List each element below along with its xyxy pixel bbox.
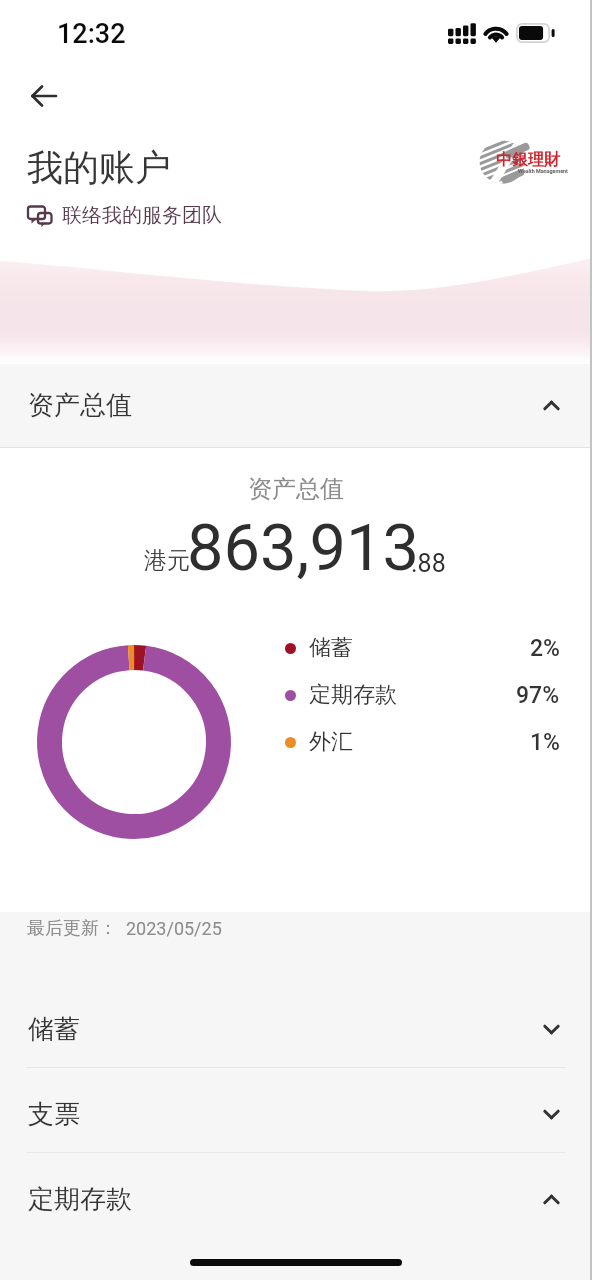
- staticText: 我的账户: [27, 145, 171, 190]
- staticText: 2%: [530, 635, 560, 662]
- other: BOC Wealth Management: [480, 139, 566, 185]
- staticText: 资产总值: [28, 389, 132, 422]
- staticText: 支票: [28, 1098, 80, 1131]
- staticText: 12:32: [57, 18, 126, 50]
- button[interactable]: 资产总值: [0, 364, 592, 447]
- staticText: 1%: [530, 729, 560, 756]
- staticText: 97%: [516, 682, 560, 709]
- staticText: 联络我的服务团队: [62, 203, 222, 228]
- staticText: .88: [411, 549, 446, 578]
- staticText: 储蓄: [309, 634, 353, 662]
- button[interactable]: 支票: [0, 1072, 592, 1157]
- staticText: 港元: [144, 546, 190, 575]
- staticText: 外汇: [309, 728, 353, 756]
- button[interactable]: 联络我的服务团队: [24, 199, 224, 231]
- staticText: 中銀理財: [496, 150, 560, 170]
- staticText: 资产总值: [0, 474, 592, 504]
- button[interactable]: Back: [20, 72, 68, 120]
- button[interactable]: 定期存款: [0, 1157, 592, 1242]
- button[interactable]: 外汇: [272, 728, 560, 756]
- staticText: 最后更新：: [27, 917, 117, 940]
- staticText: 定期存款: [28, 1183, 132, 1216]
- button[interactable]: 储蓄: [0, 987, 592, 1072]
- button[interactable]: 储蓄: [272, 634, 560, 662]
- staticText: 863,913: [187, 510, 419, 586]
- button[interactable]: 定期存款: [272, 681, 560, 709]
- staticText: Wealth Management: [518, 168, 568, 174]
- staticText: 定期存款: [309, 681, 397, 709]
- staticText: 储蓄: [28, 1013, 80, 1046]
- staticText: 2023/05/25: [126, 918, 222, 939]
